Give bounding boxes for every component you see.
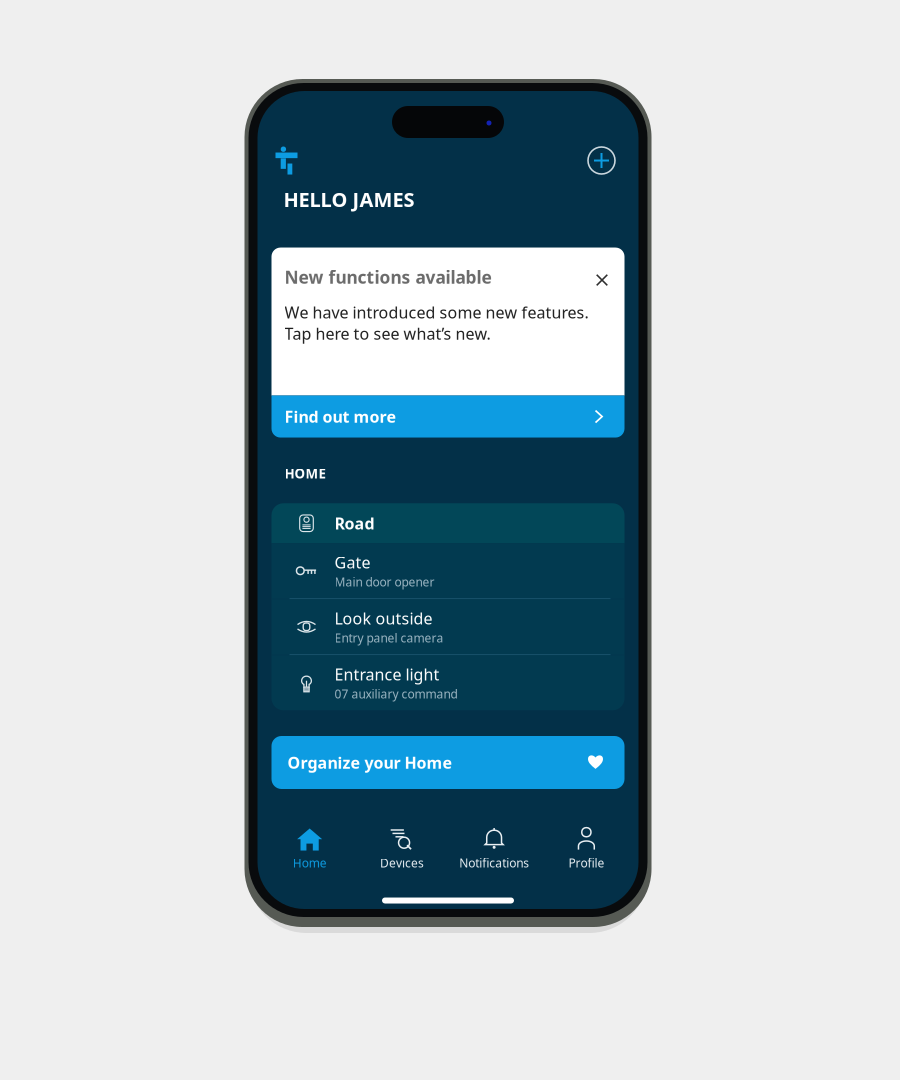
button[interactable]: Home app logo [271,145,301,175]
staticText: 07 auxiliary command [334,686,457,702]
staticText: Home [293,855,327,871]
button[interactable]: Add device [585,145,617,175]
button[interactable]: Find out more [271,396,624,438]
staticText: HELLO JAMES [283,186,414,213]
button[interactable]: Devices [356,827,448,871]
button[interactable]: Home [263,827,356,871]
button[interactable]: Entrance light [271,655,624,710]
button[interactable]: Look outside [271,599,624,654]
staticText: Devices [380,855,424,871]
button[interactable]: Road [271,503,624,543]
staticText: HOME [284,465,325,482]
staticText: New functions available [284,266,491,289]
button[interactable]: Gate [271,543,624,598]
staticText: We have introduced some new features. Ta… [284,302,588,344]
staticText: Entrance light [334,664,439,685]
staticText: Find out more [284,406,396,427]
staticText: Profile [568,855,604,871]
staticText: Main door opener [334,574,434,590]
staticText: Gate [334,552,370,573]
staticText: Look outside [334,608,432,629]
staticText: Road [334,513,374,534]
button[interactable]: Profile [540,827,632,871]
staticText: Organize your Home [287,752,452,773]
staticText: Entry panel camera [334,630,443,646]
button[interactable]: Organize your Home [271,736,624,789]
button[interactable]: Notifications [448,827,540,871]
button[interactable]: New functions available [271,248,624,396]
staticText: Notifications [459,855,529,871]
